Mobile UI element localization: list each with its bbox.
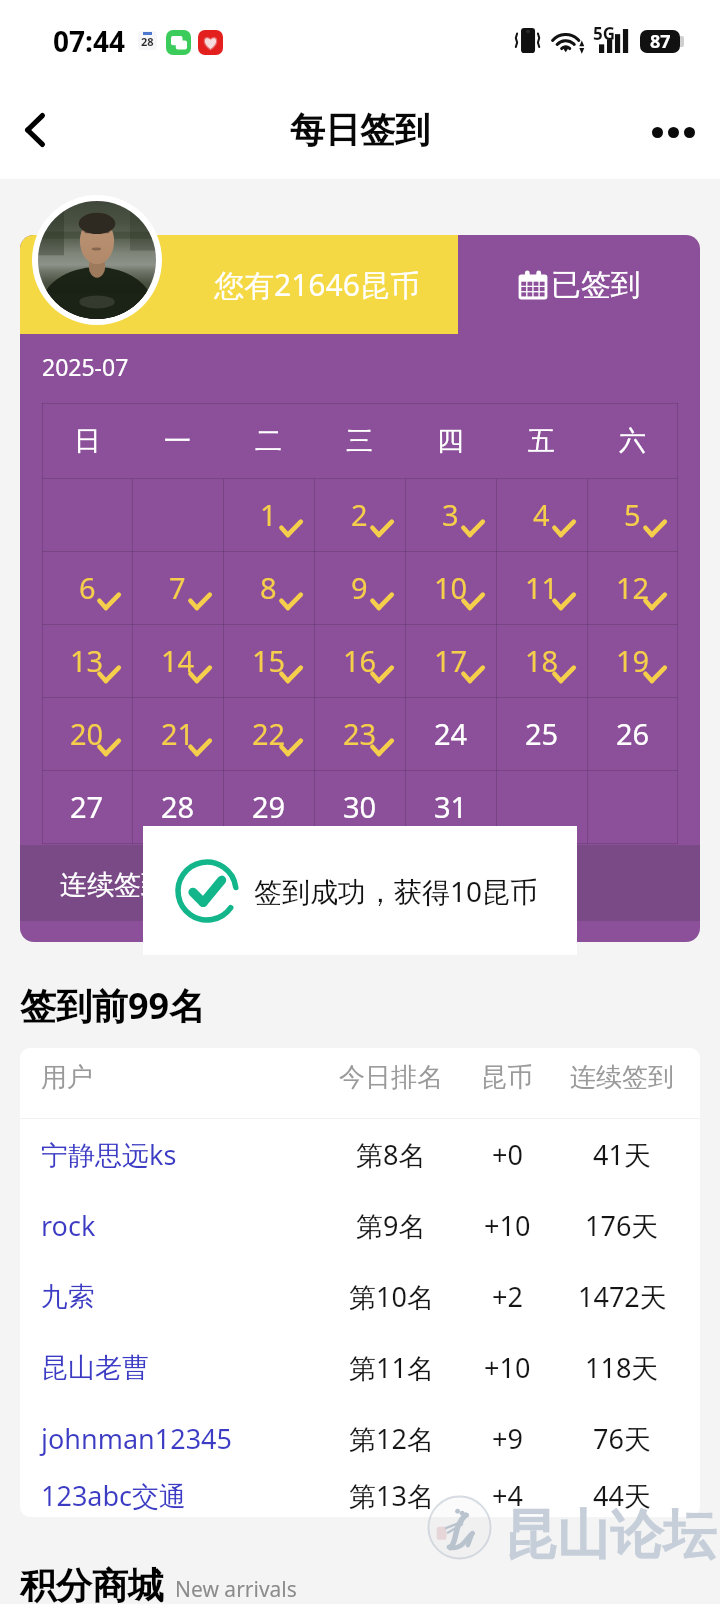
staticText: 连续签到 [570,1061,674,1094]
staticText: 28 [161,787,195,826]
staticText: +0 [492,1136,523,1173]
staticText: +2 [492,1278,523,1315]
staticText: 今日排名 [339,1061,443,1094]
staticText: 日 [74,424,101,458]
button[interactable]: 6 [42,552,132,625]
button[interactable]: 5 [587,479,678,552]
button[interactable]: 18 [496,625,587,698]
staticText: 25 [525,714,559,753]
button[interactable]: 11 [496,552,587,625]
button[interactable]: 29 [223,771,314,844]
button[interactable]: 17 [405,625,496,698]
button[interactable]: 22 [223,698,314,771]
button[interactable]: 16 [314,625,405,698]
button[interactable]: 九索 [20,1261,700,1332]
button[interactable]: More options [638,94,720,176]
staticText: 76天 [593,1420,651,1457]
staticText: 五 [528,424,555,458]
staticText: 九索 [41,1280,95,1314]
staticText: 123abc交通 [41,1477,187,1514]
staticText: 签到成功，获得10昆币 [254,872,539,910]
staticText: 29 [252,787,286,826]
button[interactable]: 25 [496,698,587,771]
staticText: 三 [346,424,373,458]
staticText: 22 [252,714,286,753]
staticText: 5 [624,495,641,534]
button[interactable]: johnman12345 [20,1403,700,1474]
staticText: 7 [169,568,186,607]
staticText: 每日签到 [290,108,430,152]
staticText: 6 [79,568,96,607]
staticText: 21 [161,714,195,753]
button[interactable]: 15 [223,625,314,698]
staticText: 一 [164,424,191,458]
staticText: +10 [484,1349,531,1386]
staticText: rock [41,1207,96,1244]
staticText: 11 [525,568,559,607]
staticText: 12 [616,568,650,607]
staticText: 第13名 [349,1477,434,1514]
staticText: 第11名 [349,1349,434,1386]
button[interactable]: 26 [587,698,678,771]
staticText: 18 [525,641,559,680]
staticText: 积分商城 [20,1563,164,1604]
staticText: 5G [593,22,616,45]
staticText: 13 [70,641,104,680]
button[interactable]: 昆山老曹 [20,1332,700,1403]
staticText: +4 [492,1477,523,1514]
staticText: 4 [533,495,550,534]
button[interactable]: 10 [405,552,496,625]
button[interactable]: 21 [132,698,223,771]
button[interactable]: rock [20,1190,700,1261]
staticText: 昆山论坛 [504,1502,716,1569]
button[interactable]: 7 [132,552,223,625]
staticText: 16 [343,641,377,680]
button[interactable]: 28 [132,771,223,844]
staticText: 二 [255,424,282,458]
staticText: 15 [252,641,286,680]
button[interactable]: 13 [42,625,132,698]
button[interactable]: 12 [587,552,678,625]
button[interactable]: 123abc交通 [20,1474,700,1517]
staticText: 您有21646昆币 [214,264,420,305]
button[interactable]: 24 [405,698,496,771]
staticText: 8 [260,568,277,607]
button[interactable]: 14 [132,625,223,698]
button[interactable]: 8 [223,552,314,625]
staticText: +10 [484,1207,531,1244]
staticText: 已签到 [551,266,641,304]
staticText: 28 [141,34,154,49]
button[interactable]: 4 [496,479,587,552]
button[interactable]: 23 [314,698,405,771]
staticText: 第9名 [356,1207,426,1244]
staticText: 23 [343,714,377,753]
button[interactable]: 1 [223,479,314,552]
staticText: 1472天 [578,1278,667,1315]
staticText: 14 [161,641,195,680]
staticText: 昆山老曹 [41,1351,149,1385]
button[interactable]: 宁静思远ks [20,1119,700,1190]
button[interactable]: 31 [405,771,496,844]
staticText: 昆币 [481,1061,533,1094]
staticText: 19 [616,641,650,680]
staticText: 2025-07 [42,351,129,382]
staticText: johnman12345 [41,1420,232,1457]
staticText: 用户 [41,1061,93,1094]
staticText: 2 [351,495,368,534]
button[interactable]: 19 [587,625,678,698]
staticText: 宁静思远ks [41,1136,177,1173]
staticText: 118天 [585,1349,659,1386]
staticText: 20 [70,714,104,753]
button[interactable]: 20 [42,698,132,771]
button[interactable]: 30 [314,771,405,844]
staticText: 26 [616,714,650,753]
button[interactable]: 3 [405,479,496,552]
staticText: 四 [437,424,464,458]
staticText: 连续签到41天 [60,865,226,902]
staticText: 24 [434,714,468,753]
button[interactable]: 9 [314,552,405,625]
button[interactable]: 2 [314,479,405,552]
staticText: 41天 [593,1136,651,1173]
button[interactable]: Back [0,98,74,172]
button[interactable]: 27 [42,771,132,844]
